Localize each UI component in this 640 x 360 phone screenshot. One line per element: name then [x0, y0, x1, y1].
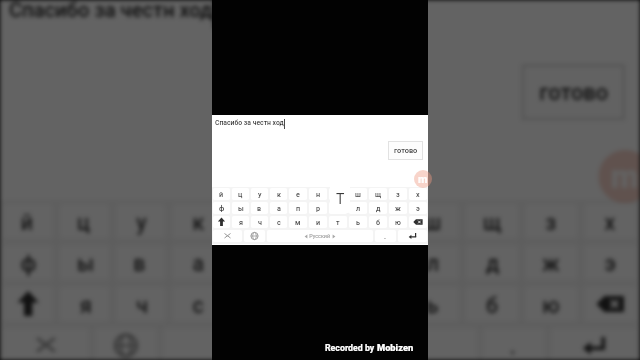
button[interactable]: Record — [598, 150, 640, 203]
button[interactable]: ч — [116, 286, 166, 322]
button[interactable]: т — [329, 216, 347, 228]
button[interactable]: у — [251, 188, 268, 200]
button[interactable]: э — [584, 245, 637, 280]
button[interactable]: и — [309, 216, 327, 228]
button[interactable]: с — [270, 216, 287, 228]
button[interactable]: д — [369, 202, 387, 214]
staticText: щ — [375, 190, 382, 198]
button[interactable]: я — [59, 286, 110, 322]
button[interactable]: х — [584, 203, 637, 239]
button[interactable]: г — [347, 203, 400, 239]
button[interactable]: я — [232, 216, 249, 228]
button[interactable]: р — [309, 202, 327, 214]
button[interactable]: Русский — [267, 230, 373, 242]
staticText: л — [427, 251, 441, 274]
button[interactable]: ь — [406, 286, 459, 322]
button[interactable]: б — [369, 216, 387, 228]
button[interactable]: б — [465, 286, 518, 322]
button[interactable]: н — [287, 203, 341, 239]
button[interactable]: щ — [465, 203, 518, 239]
staticText: ю — [395, 218, 401, 226]
button[interactable]: е — [289, 188, 307, 200]
staticText: ы — [77, 251, 95, 274]
button[interactable]: л — [406, 245, 459, 280]
staticText: ж — [542, 251, 560, 274]
staticText: з — [545, 209, 557, 233]
staticText: е — [249, 209, 261, 233]
button[interactable]: к — [270, 188, 287, 200]
button[interactable]: ш — [349, 188, 367, 200]
button[interactable]: Shift — [3, 286, 53, 322]
button[interactable]: с — [172, 286, 222, 322]
button[interactable]: ю — [524, 286, 578, 322]
button[interactable]: готово — [521, 64, 625, 120]
button[interactable]: готово — [388, 141, 423, 160]
button[interactable]: ж — [389, 202, 407, 214]
button[interactable]: ф — [213, 202, 230, 214]
staticText: я — [239, 218, 243, 226]
staticText: . — [510, 334, 518, 357]
staticText: и — [316, 218, 321, 226]
button[interactable]: г — [329, 188, 347, 200]
button[interactable]: Change keyboard — [244, 230, 265, 242]
button[interactable]: Enter — [398, 230, 427, 242]
button[interactable]: в — [251, 202, 268, 214]
staticText: х — [416, 190, 420, 198]
button[interactable]: п — [289, 202, 307, 214]
button[interactable]: Shift — [213, 216, 230, 228]
button[interactable]: Backspace — [409, 216, 427, 228]
button[interactable]: Русский — [163, 328, 477, 360]
staticText: г — [367, 209, 379, 233]
button[interactable]: ш — [406, 203, 459, 239]
button[interactable]: ц — [232, 188, 249, 200]
button[interactable]: ы — [59, 245, 110, 280]
staticText: я — [80, 292, 92, 316]
button[interactable]: к — [172, 203, 222, 239]
button[interactable]: н — [309, 188, 327, 200]
staticText: г — [336, 190, 340, 198]
button[interactable]: а — [172, 245, 222, 280]
staticText: в — [133, 251, 148, 274]
button[interactable]: Enter — [551, 328, 637, 360]
button[interactable]: й — [213, 188, 230, 200]
button[interactable]: з — [389, 188, 407, 200]
button[interactable]: з — [524, 203, 578, 239]
button[interactable]: Record — [414, 170, 432, 188]
button[interactable]: х — [409, 188, 427, 200]
button[interactable]: ц — [59, 203, 110, 239]
button[interactable]: о — [329, 202, 347, 214]
button[interactable]: л — [349, 202, 367, 214]
staticText: ч — [258, 218, 262, 226]
button[interactable]: ф — [3, 245, 53, 280]
button[interactable]: э — [409, 202, 427, 214]
button[interactable]: Symbols — [213, 230, 242, 242]
button[interactable]: Change keyboard — [95, 328, 157, 360]
button[interactable]: ы — [232, 202, 249, 214]
staticText: ч — [136, 292, 148, 316]
button[interactable]: . — [375, 230, 396, 242]
button[interactable]: Symbols — [3, 328, 89, 360]
button[interactable]: у — [116, 203, 166, 239]
button[interactable]: а — [270, 202, 287, 214]
button[interactable]: й — [3, 203, 53, 239]
button[interactable]: щ — [369, 188, 387, 200]
button[interactable]: ь — [349, 216, 367, 228]
button[interactable]: . — [483, 328, 545, 360]
button[interactable]: ж — [524, 245, 578, 280]
button[interactable]: ч — [251, 216, 268, 228]
staticText: е — [296, 190, 300, 198]
button[interactable]: в — [116, 245, 166, 280]
button[interactable]: е — [228, 203, 281, 239]
staticText: х — [604, 209, 616, 233]
button[interactable]: Backspace — [584, 286, 637, 322]
button[interactable]: ю — [389, 216, 407, 228]
button[interactable]: д — [465, 245, 518, 280]
staticText: ю — [542, 292, 560, 316]
button[interactable]: м — [289, 216, 307, 228]
